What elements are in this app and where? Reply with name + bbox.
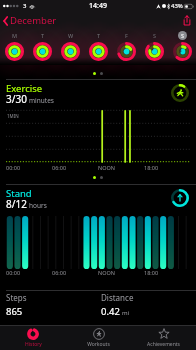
staticText: 3 (23, 2, 27, 10)
staticText: 14:49 (89, 1, 107, 11)
staticText: Exercise (6, 82, 43, 95)
button[interactable]: History (0, 326, 66, 350)
button[interactable]: December (0, 12, 63, 29)
staticText: December (10, 14, 57, 27)
staticText: 00:00 (6, 269, 21, 276)
button[interactable]: Share (178, 13, 196, 28)
button[interactable]: Workouts (66, 326, 131, 350)
staticText: W (68, 32, 74, 39)
staticText: Achievements (147, 341, 180, 348)
staticText: F (125, 32, 128, 39)
staticText: 865 (6, 305, 23, 318)
staticText: minutes (29, 96, 54, 105)
staticText: S (181, 32, 185, 39)
button[interactable]: Achievements (131, 326, 196, 350)
button[interactable]: W (56, 31, 84, 63)
staticText: T (97, 32, 101, 39)
staticText: 3/30 (6, 92, 27, 106)
staticText: 18:00 (144, 164, 159, 171)
staticText: 8/12 (6, 197, 27, 211)
staticText: 18:00 (144, 269, 159, 276)
staticText: Stand (6, 187, 32, 200)
staticText: 1MIN (7, 113, 19, 119)
staticText: 06:00 (52, 164, 67, 171)
staticText: History (25, 341, 42, 348)
button[interactable]: M (0, 31, 28, 63)
button[interactable]: S (168, 31, 196, 63)
staticText: M (12, 32, 18, 39)
button[interactable]: T (28, 31, 56, 63)
staticText: 0.42 (101, 305, 120, 318)
staticText: hours (29, 201, 47, 210)
staticText: Steps (6, 292, 27, 303)
staticText: 06:00 (52, 269, 67, 276)
staticText: NOON (98, 164, 115, 171)
staticText: NOON (98, 269, 115, 276)
staticText: mi (122, 309, 130, 317)
staticText: 43% (171, 2, 183, 10)
staticText: Workouts (87, 341, 110, 348)
button[interactable]: S (140, 31, 168, 63)
staticText: 00:00 (6, 164, 21, 171)
staticText: T (41, 32, 45, 39)
button[interactable]: T (84, 31, 112, 63)
staticText: S (153, 32, 157, 39)
staticText: Distance (101, 292, 134, 303)
button[interactable]: F (112, 31, 140, 63)
